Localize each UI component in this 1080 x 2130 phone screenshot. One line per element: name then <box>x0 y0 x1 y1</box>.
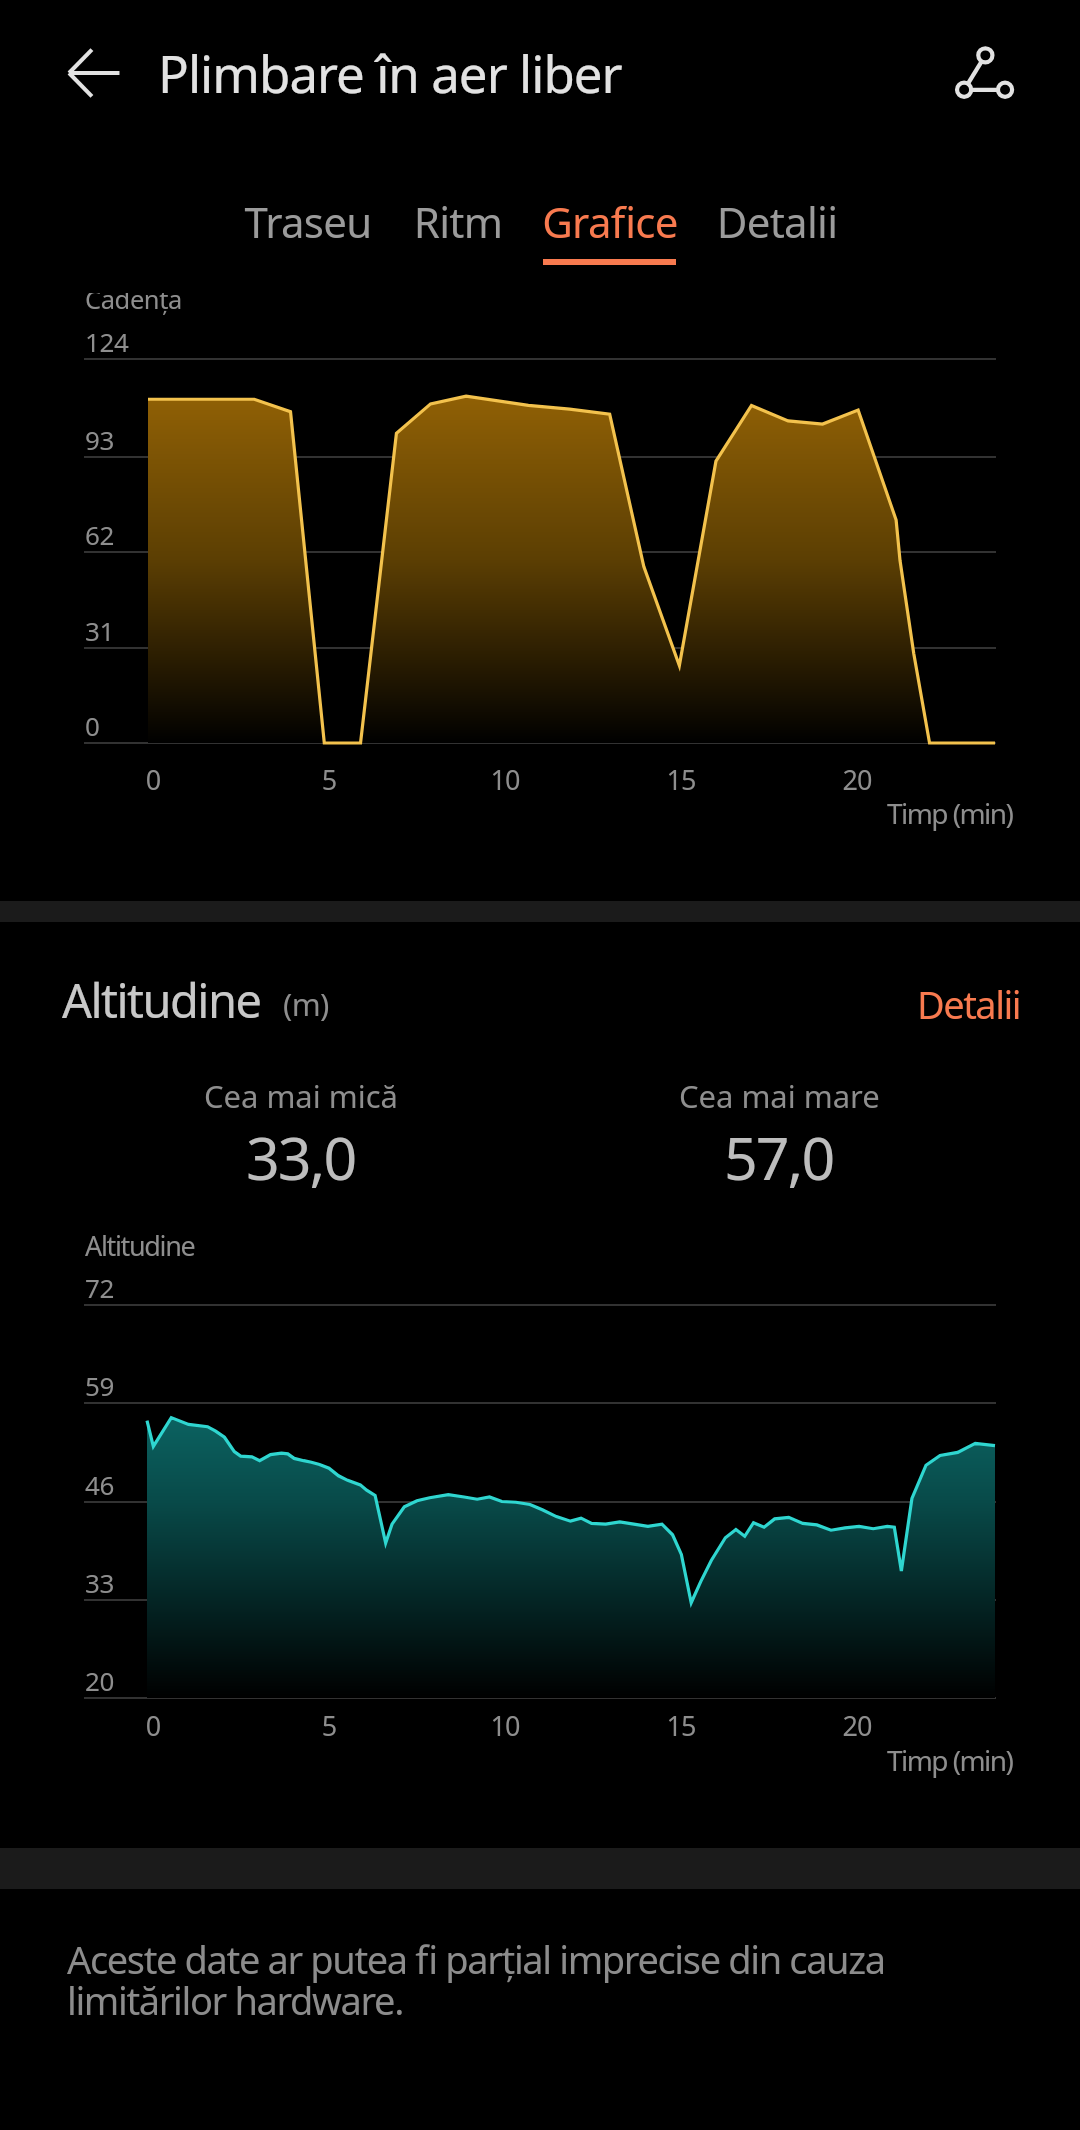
staticText: 0 <box>108 761 198 798</box>
staticText: Plimbare în aer liber <box>158 38 622 107</box>
staticText: 20 <box>812 1707 902 1744</box>
button[interactable]: Share <box>937 25 1033 121</box>
staticText: 15 <box>636 761 726 798</box>
staticText: 15 <box>636 1707 726 1744</box>
staticText: Timp (min) <box>887 1741 1013 1779</box>
staticText: 46 <box>85 1467 115 1502</box>
staticText: Cea mai mare <box>679 1075 880 1117</box>
staticText: 33,0 <box>246 1117 356 1197</box>
button[interactable]: Grafice <box>530 178 690 274</box>
staticText: Grafice <box>530 193 690 250</box>
staticText: 57,0 <box>724 1117 834 1197</box>
staticText: Ritm <box>378 193 538 250</box>
staticText: 0 <box>108 1707 198 1744</box>
staticText: Traseu <box>228 193 388 250</box>
button[interactable]: Back <box>46 25 142 121</box>
staticText: Detalii <box>697 193 857 250</box>
button[interactable]: Ritm <box>378 178 538 274</box>
staticText: 31 <box>85 613 115 648</box>
staticText: Cea mai mică <box>204 1075 398 1117</box>
staticText: 33 <box>85 1565 115 1600</box>
staticText: 10 <box>460 761 550 798</box>
staticText: 59 <box>85 1368 115 1403</box>
staticText: (m) <box>283 983 329 1025</box>
staticText: Altitudine <box>85 1227 195 1264</box>
staticText: 72 <box>85 1270 115 1305</box>
staticText: 20 <box>85 1663 115 1698</box>
staticText: Timp (min) <box>887 794 1013 832</box>
staticText: 5 <box>284 1707 374 1744</box>
staticText: Aceste date ar putea fi parțial imprecis… <box>67 1933 907 2027</box>
staticText: 5 <box>284 761 374 798</box>
staticText: 10 <box>460 1707 550 1744</box>
staticText: 62 <box>85 517 115 552</box>
button[interactable]: Detalii <box>697 178 857 274</box>
button[interactable]: Detalii <box>890 962 1040 1038</box>
staticText: 93 <box>85 422 115 457</box>
staticText: 20 <box>812 761 902 798</box>
staticText: 124 <box>85 324 129 359</box>
button[interactable]: Traseu <box>228 178 388 274</box>
staticText: Detalii <box>917 978 1020 1030</box>
staticText: 0 <box>85 708 100 743</box>
staticText: Cadența <box>85 293 182 316</box>
staticText: Altitudine <box>62 968 261 1032</box>
